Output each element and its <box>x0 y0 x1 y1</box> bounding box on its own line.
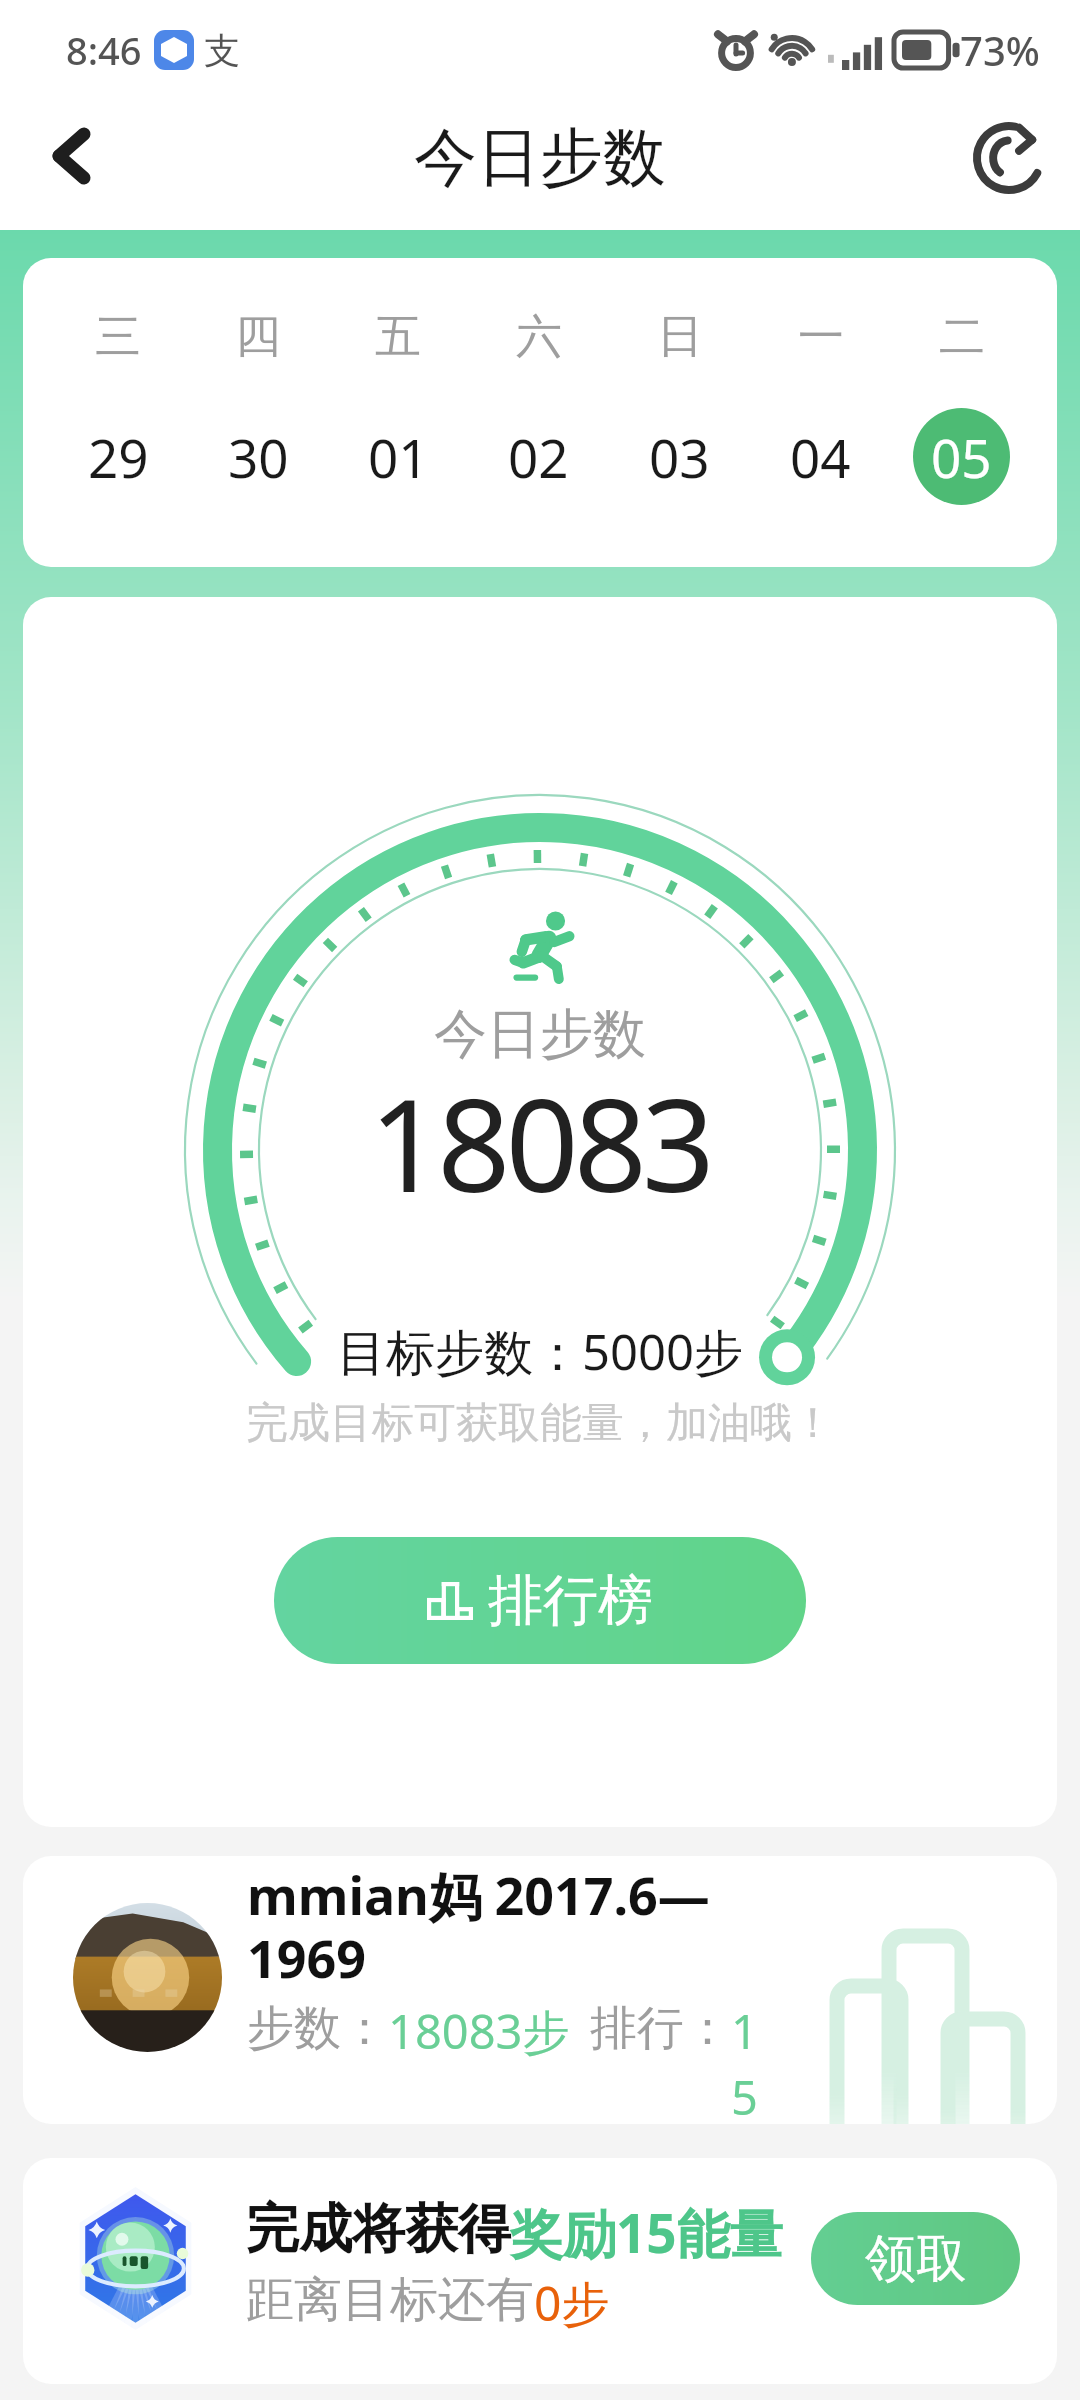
button[interactable]: 排行榜 <box>274 1537 806 1664</box>
staticText: 03 <box>649 421 710 493</box>
staticText: 支 <box>204 28 240 73</box>
staticText: 排行榜 <box>488 1566 653 1635</box>
staticText: 一 <box>798 308 844 366</box>
staticText: 步数： <box>247 1999 388 2058</box>
staticText: 01 <box>368 421 429 493</box>
staticText: 距离目标还有 <box>246 2270 534 2330</box>
staticText: 29 <box>88 421 149 493</box>
staticText: 04 <box>790 421 851 493</box>
staticText: 15 <box>731 1999 765 2124</box>
staticText: 日 <box>657 308 703 366</box>
staticText: 02 <box>508 421 569 493</box>
button[interactable]: Refresh <box>963 110 1055 202</box>
staticText: 今日步数 <box>434 1001 646 1068</box>
button[interactable]: 04 <box>772 408 869 505</box>
button[interactable]: 05 <box>913 408 1010 505</box>
staticText: 完成目标可获取能量，加油哦！ <box>246 1397 834 1450</box>
button[interactable]: Back <box>25 110 117 202</box>
button[interactable]: 02 <box>490 408 587 505</box>
staticText: 今日步数 <box>414 118 666 197</box>
staticText: 05 <box>931 421 992 493</box>
staticText: 目标步数：5000步 <box>337 1318 744 1385</box>
staticText: 0步 <box>534 2270 610 2336</box>
staticText: 30 <box>228 421 289 493</box>
button[interactable]: 29 <box>70 408 167 505</box>
staticText: 三 <box>95 308 141 366</box>
button[interactable]: 03 <box>631 408 728 505</box>
staticText: 奖励15能量 <box>510 2196 783 2268</box>
staticText: 18083步 <box>388 1999 570 2063</box>
staticText: 73% <box>960 23 1040 77</box>
button[interactable]: 01 <box>350 408 447 505</box>
staticText: 四 <box>235 308 281 366</box>
staticText: 18083 <box>369 1055 711 1229</box>
staticText: 六 <box>516 308 562 366</box>
staticText: 8:46 <box>66 24 142 76</box>
staticText: 二 <box>939 308 985 366</box>
staticText: mmian妈 2017.6— 1969 <box>247 1859 807 1993</box>
staticText: 排行： <box>590 1999 731 2058</box>
button[interactable]: 领取 <box>811 2212 1020 2305</box>
staticText: 领取 <box>865 2227 967 2291</box>
button[interactable]: mmian妈 2017.6— 1969 <box>23 1856 1057 2124</box>
staticText: 五 <box>375 308 421 366</box>
button[interactable]: 30 <box>210 408 307 505</box>
staticText: 完成将获得 <box>246 2196 511 2263</box>
